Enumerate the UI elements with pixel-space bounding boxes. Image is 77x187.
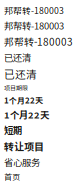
staticText: 转让项目 bbox=[4, 139, 44, 153]
staticText: 邦帮转-180003 bbox=[4, 18, 64, 32]
staticText: 邦帮转-180003 bbox=[4, 34, 73, 49]
staticText: 已还清 bbox=[4, 50, 31, 64]
staticText: 省心服务 bbox=[4, 155, 40, 169]
staticText: 邦帮转-180003 bbox=[4, 4, 64, 16]
staticText: 项目期限 bbox=[4, 83, 28, 92]
staticText: 1个月22天 bbox=[4, 108, 49, 121]
staticText: 短期 bbox=[4, 123, 22, 137]
staticText: 首页 bbox=[4, 171, 20, 182]
staticText: 1个月22天 bbox=[4, 94, 43, 106]
staticText: 已还清 bbox=[4, 66, 37, 81]
